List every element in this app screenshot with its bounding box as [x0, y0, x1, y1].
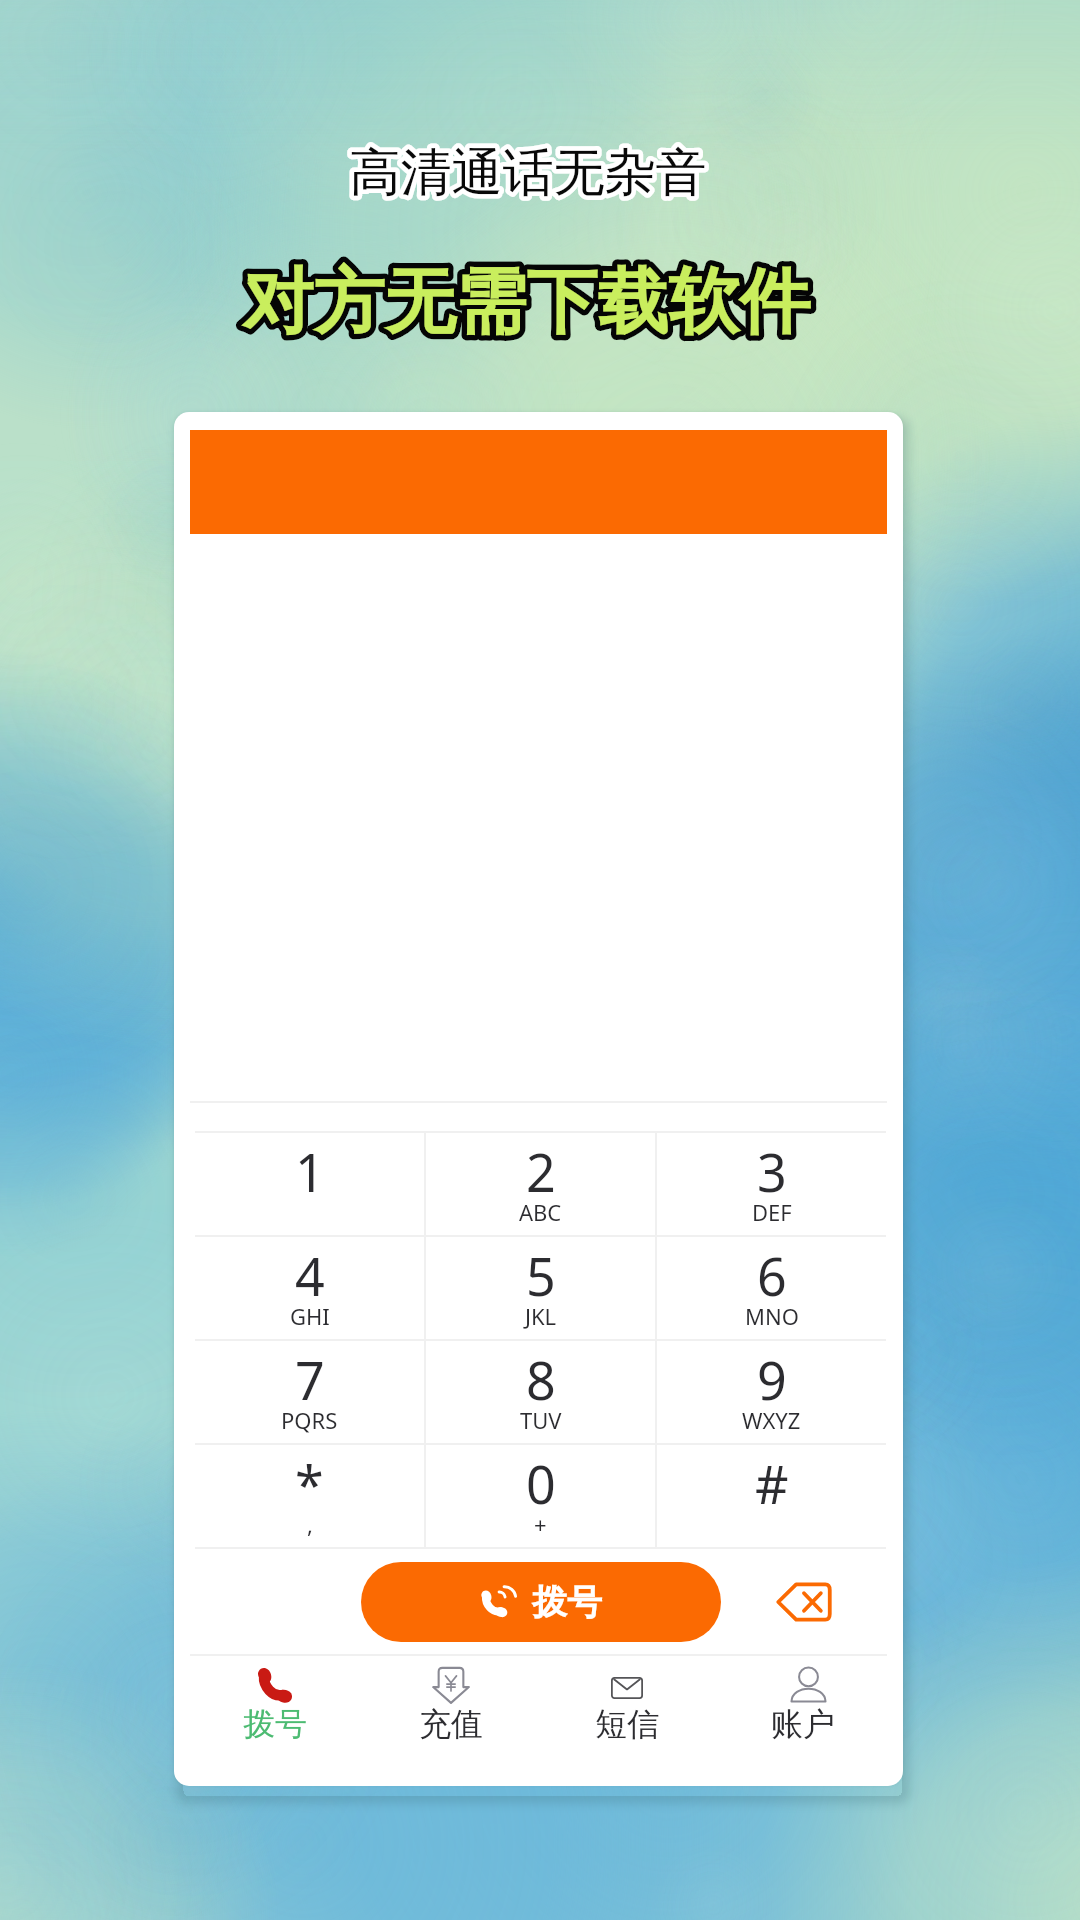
button[interactable]: #	[657, 1445, 886, 1547]
staticText: WXYZ	[742, 1405, 801, 1435]
staticText: 3	[757, 1136, 787, 1207]
staticText: 拨号	[532, 1580, 602, 1624]
staticText: 8	[526, 1344, 556, 1415]
staticText: ,	[307, 1509, 313, 1539]
button[interactable]: 1	[195, 1133, 424, 1235]
staticText: DEF	[752, 1197, 792, 1227]
button[interactable]: 充值	[363, 1654, 539, 1786]
staticText: 7	[295, 1344, 325, 1415]
staticText: 4	[295, 1240, 325, 1311]
staticText: GHI	[290, 1301, 330, 1331]
button[interactable]: 3	[657, 1133, 886, 1235]
button[interactable]: 9	[657, 1341, 886, 1443]
staticText: 短信	[595, 1704, 659, 1744]
staticText: 5	[526, 1240, 556, 1311]
staticText: JKL	[525, 1301, 557, 1331]
button[interactable]: 账户	[715, 1654, 891, 1786]
staticText: 账户	[771, 1704, 835, 1744]
staticText: 2	[526, 1136, 556, 1207]
staticText: PQRS	[281, 1405, 338, 1435]
button[interactable]: 2	[426, 1133, 655, 1235]
staticText: 1	[295, 1136, 325, 1207]
button[interactable]: 6	[657, 1237, 886, 1339]
button[interactable]: 短信	[539, 1654, 715, 1786]
staticText: 9	[757, 1344, 787, 1415]
staticText: #	[755, 1448, 789, 1519]
button[interactable]: 7	[195, 1341, 424, 1443]
staticText: 6	[757, 1240, 787, 1311]
button[interactable]: *	[195, 1445, 424, 1547]
staticText: TUV	[520, 1405, 562, 1435]
button[interactable]: Backspace	[770, 1574, 838, 1630]
button[interactable]: 8	[426, 1341, 655, 1443]
staticText: 0	[526, 1448, 556, 1519]
button[interactable]: 5	[426, 1237, 655, 1339]
button[interactable]: 拨号	[361, 1562, 721, 1642]
staticText: 充值	[419, 1704, 483, 1744]
staticText: +	[534, 1509, 547, 1539]
staticText: ABC	[519, 1197, 562, 1227]
button[interactable]: 拨号	[186, 1654, 363, 1786]
button[interactable]: 4	[195, 1237, 424, 1339]
staticText: MNO	[745, 1301, 799, 1331]
staticText: 拨号	[243, 1704, 307, 1744]
staticText: *	[295, 1448, 324, 1519]
button[interactable]: 0	[426, 1445, 655, 1547]
